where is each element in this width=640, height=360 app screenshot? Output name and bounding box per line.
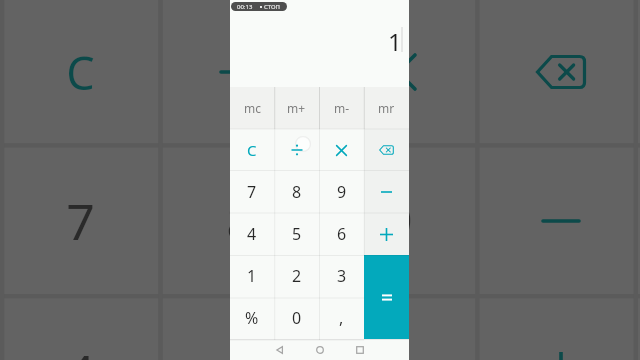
button[interactable]: [364, 213, 409, 255]
button[interactable]: 0: [274, 297, 319, 339]
staticText: 8: [292, 181, 302, 203]
button[interactable]: Multiply: [319, 129, 364, 171]
staticText: 7: [247, 181, 257, 203]
button[interactable]: C: [230, 129, 274, 171]
button[interactable]: m-: [319, 87, 364, 129]
button[interactable]: 8: [274, 171, 319, 213]
button[interactable]: mc: [230, 87, 274, 129]
button[interactable]: Backspace: [364, 129, 409, 171]
button[interactable]: 9: [319, 171, 364, 213]
button[interactable]: 4: [230, 213, 274, 255]
staticText: 6: [337, 223, 347, 245]
staticText: СТОП: [264, 3, 281, 11]
staticText: m-: [334, 100, 350, 116]
staticText: 4: [66, 338, 95, 360]
staticText: 4: [247, 223, 257, 245]
button[interactable]: 5: [274, 213, 319, 255]
button[interactable]: 2: [274, 255, 319, 297]
button[interactable]: 6: [319, 213, 364, 255]
staticText: 00:13: [237, 3, 253, 11]
button[interactable]: Recent apps: [349, 339, 370, 360]
staticText: 3: [337, 265, 347, 287]
button[interactable]: Back: [269, 339, 290, 360]
staticText: 1: [247, 265, 257, 287]
staticText: 9: [337, 181, 347, 203]
staticText: 8: [226, 187, 255, 255]
staticText: mc: [244, 100, 261, 116]
button[interactable]: Divide: [274, 129, 319, 171]
staticText: 9: [384, 187, 413, 255]
staticText: ,: [339, 307, 344, 329]
staticText: C: [66, 42, 95, 103]
button[interactable]: 1: [230, 255, 274, 297]
staticText: C: [247, 140, 257, 160]
staticText: 7: [66, 187, 95, 255]
staticText: 1: [388, 25, 402, 58]
button[interactable]: [364, 171, 409, 213]
button[interactable]: [364, 255, 409, 339]
staticText: 2: [292, 265, 302, 287]
staticText: 6: [384, 338, 413, 360]
button[interactable]: %: [230, 297, 274, 339]
staticText: 5: [292, 223, 302, 245]
staticText: 5: [226, 338, 255, 360]
button[interactable]: 7: [230, 171, 274, 213]
staticText: mr: [378, 100, 395, 116]
button[interactable]: Home: [309, 339, 330, 360]
staticText: m+: [287, 100, 306, 116]
button[interactable]: Stop recording: [231, 2, 287, 11]
button[interactable]: mr: [364, 87, 409, 129]
button[interactable]: ,: [319, 297, 364, 339]
button[interactable]: 3: [319, 255, 364, 297]
staticText: 0: [292, 307, 302, 329]
staticText: %: [245, 307, 259, 329]
button[interactable]: m+: [274, 87, 319, 129]
